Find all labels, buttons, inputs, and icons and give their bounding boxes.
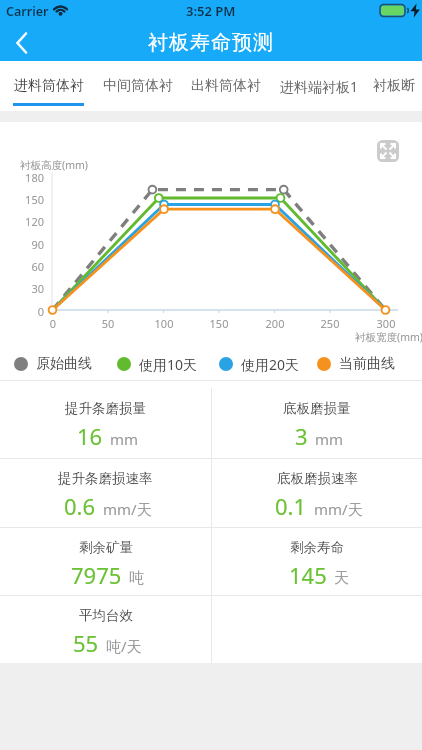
button[interactable]: 平均台效 bbox=[0, 596, 211, 663]
staticText: mm bbox=[110, 429, 139, 449]
button[interactable]: 提升条磨损量 bbox=[0, 388, 211, 458]
button[interactable]: 衬板断 bbox=[363, 61, 422, 111]
staticText: 提升条磨损量 bbox=[65, 400, 146, 417]
button[interactable]: 剩余寿命 bbox=[212, 528, 422, 595]
staticText: 出料筒体衬 bbox=[191, 77, 261, 95]
staticText: 0.1 bbox=[275, 491, 307, 521]
staticText: 3:52 PM bbox=[186, 2, 236, 20]
staticText: 120 bbox=[12, 214, 44, 229]
staticText: mm/天 bbox=[314, 499, 363, 519]
button[interactable]: 剩余矿量 bbox=[0, 528, 211, 595]
button[interactable]: 原始曲线 bbox=[14, 348, 92, 380]
staticText: 吨 bbox=[129, 569, 144, 588]
staticText: 剩余寿命 bbox=[290, 539, 344, 556]
staticText: 天 bbox=[334, 569, 349, 588]
staticText: 0 bbox=[12, 304, 44, 319]
staticText: 衬板断 bbox=[373, 77, 415, 95]
staticText: 衬板寿命预测 bbox=[0, 30, 422, 55]
button[interactable]: 出料筒体衬 bbox=[181, 61, 270, 111]
button[interactable]: 使用10天 bbox=[117, 348, 198, 380]
staticText: 300 bbox=[366, 316, 406, 331]
staticText: 当前曲线 bbox=[339, 355, 395, 373]
staticText: 16 bbox=[77, 421, 103, 451]
staticText: 使用20天 bbox=[241, 355, 300, 374]
staticText: 0.6 bbox=[64, 491, 96, 521]
staticText: 0 bbox=[33, 316, 73, 331]
staticText: 100 bbox=[144, 316, 184, 331]
button[interactable]: 使用20天 bbox=[219, 348, 300, 380]
button[interactable]: 进料筒体衬 bbox=[4, 61, 93, 111]
staticText: 衬板高度(mm) bbox=[20, 158, 88, 172]
staticText: 吨/天 bbox=[106, 636, 142, 656]
button[interactable]: 提升条磨损速率 bbox=[0, 459, 211, 527]
staticText: 50 bbox=[88, 316, 128, 331]
staticText: 进料端衬板1 bbox=[280, 77, 359, 96]
staticText: 底板磨损量 bbox=[283, 400, 351, 417]
staticText: 145 bbox=[289, 560, 327, 590]
staticText: Carrier bbox=[6, 3, 49, 20]
button[interactable]: 当前曲线 bbox=[317, 348, 395, 380]
staticText: 7975 bbox=[71, 560, 122, 590]
button[interactable] bbox=[0, 24, 44, 61]
staticText: mm bbox=[315, 429, 344, 449]
staticText: 剩余矿量 bbox=[79, 539, 133, 556]
staticText: 进料筒体衬 bbox=[14, 77, 84, 95]
button[interactable]: 底板磨损量 bbox=[212, 388, 422, 458]
staticText: 250 bbox=[310, 316, 350, 331]
button[interactable]: 底板磨损速率 bbox=[212, 459, 422, 527]
staticText: 原始曲线 bbox=[36, 355, 92, 373]
staticText: 使用10天 bbox=[139, 355, 198, 374]
staticText: 底板磨损速率 bbox=[277, 470, 358, 487]
staticText: 衬板宽度(mm) bbox=[355, 330, 422, 344]
staticText: 55 bbox=[73, 628, 99, 658]
staticText: 平均台效 bbox=[79, 607, 133, 624]
button[interactable]: 中间筒体衬 bbox=[93, 61, 182, 111]
button[interactable]: 进料端衬板1 bbox=[268, 61, 371, 111]
staticText: 180 bbox=[12, 170, 44, 185]
button[interactable] bbox=[371, 134, 405, 168]
staticText: mm/天 bbox=[103, 499, 152, 519]
staticText: 3 bbox=[295, 421, 308, 451]
staticText: 200 bbox=[255, 316, 295, 331]
staticText: 90 bbox=[12, 237, 44, 252]
staticText: 中间筒体衬 bbox=[103, 77, 173, 95]
staticText: 150 bbox=[199, 316, 239, 331]
staticText: 30 bbox=[12, 281, 44, 296]
staticText: 150 bbox=[12, 192, 44, 207]
staticText: 提升条磨损速率 bbox=[58, 470, 153, 487]
staticText: 60 bbox=[12, 259, 44, 274]
